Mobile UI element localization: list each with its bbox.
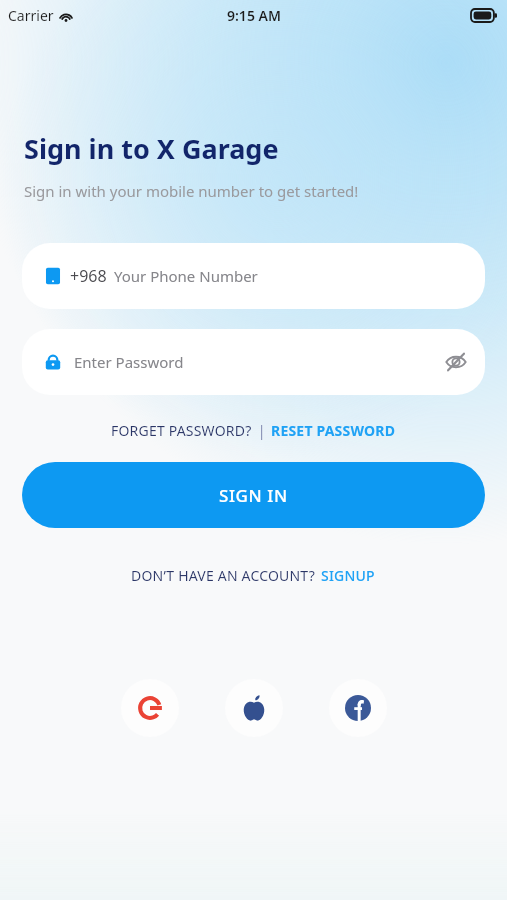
staticText: FORGET PASSWORD? xyxy=(111,421,252,440)
staticText: SIGNUP xyxy=(321,566,375,585)
staticText: SIGN IN xyxy=(219,484,288,507)
staticText: | xyxy=(254,421,269,440)
staticText: Sign in with your mobile number to get s… xyxy=(24,181,359,201)
staticText: Sign in to X Garage xyxy=(24,130,279,167)
staticText: Carrier xyxy=(8,6,54,25)
button[interactable]: Sign in with Facebook xyxy=(329,679,387,737)
button[interactable]: Enter Password xyxy=(22,329,485,395)
button[interactable]: +968 xyxy=(22,243,485,309)
button[interactable]: Sign in with Apple xyxy=(225,679,283,737)
staticText: Your Phone Number xyxy=(114,266,258,286)
staticText: +968 xyxy=(70,265,107,287)
staticText: DON’T HAVE AN ACCOUNT? xyxy=(131,566,319,585)
staticText: Enter Password xyxy=(74,352,435,372)
button[interactable]: RESET PASSWORD xyxy=(269,417,398,444)
button[interactable]: Sign in with Google xyxy=(121,679,179,737)
button[interactable]: SIGN IN xyxy=(22,462,485,528)
button[interactable]: Show password xyxy=(435,341,477,383)
staticText: 9:15 AM xyxy=(227,6,281,25)
button[interactable]: FORGET PASSWORD? xyxy=(109,417,254,444)
button[interactable]: SIGNUP xyxy=(319,562,377,589)
staticText: RESET PASSWORD xyxy=(271,421,396,440)
